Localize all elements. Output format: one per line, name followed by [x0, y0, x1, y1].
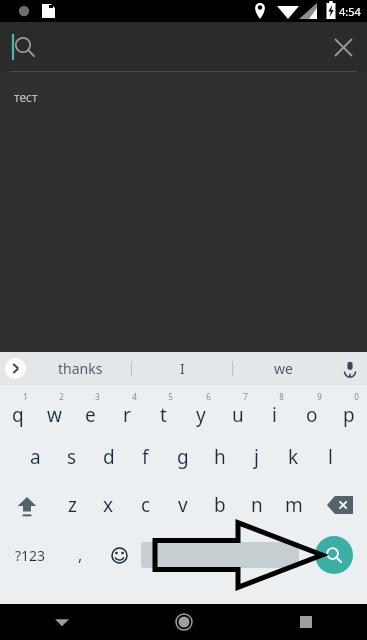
button[interactable]: Hide keyboard	[0, 604, 123, 640]
button[interactable]: 8	[256, 385, 293, 433]
button[interactable]: thanks	[30, 352, 131, 385]
staticText: j	[254, 444, 259, 470]
button[interactable]: ,	[61, 529, 100, 581]
staticText: 1	[23, 391, 28, 402]
button[interactable]: ?123	[0, 529, 61, 581]
button[interactable]: Backspace	[312, 481, 367, 529]
button[interactable]: j	[238, 433, 275, 481]
button[interactable]: n	[238, 481, 275, 529]
staticText: t	[160, 402, 167, 428]
staticText: ?123	[15, 546, 46, 565]
staticText: y	[196, 402, 206, 428]
button[interactable]: I	[132, 352, 232, 385]
button[interactable]: тест	[14, 89, 38, 105]
staticText: s	[67, 444, 77, 470]
button[interactable]: Home	[123, 604, 245, 640]
staticText: f	[142, 444, 149, 470]
button[interactable]: Shift	[0, 481, 54, 529]
staticText: i	[272, 402, 277, 428]
button[interactable]: k	[275, 433, 312, 481]
button[interactable]: Search	[301, 529, 367, 581]
staticText: 3	[95, 391, 100, 402]
button[interactable]: 7	[219, 385, 256, 433]
staticText: p	[343, 402, 355, 428]
button[interactable]: 4	[108, 385, 145, 433]
staticText: z	[68, 492, 77, 518]
staticText: ,	[78, 544, 83, 566]
staticText: 2	[59, 391, 64, 402]
button[interactable]: a	[17, 433, 53, 481]
button[interactable]: More suggestions	[0, 352, 30, 385]
staticText: 6	[206, 391, 211, 402]
button[interactable]: 0	[330, 385, 367, 433]
staticText: 4:54	[339, 4, 361, 19]
button[interactable]: v	[164, 481, 201, 529]
staticText: b	[214, 492, 226, 518]
staticText: 9	[317, 391, 322, 402]
button[interactable]: h	[201, 433, 238, 481]
staticText: e	[85, 402, 96, 428]
staticText: 7	[243, 391, 248, 402]
button[interactable]: 9	[293, 385, 330, 433]
button[interactable]: we	[233, 352, 333, 385]
button[interactable]: g	[164, 433, 201, 481]
button[interactable]: 2	[36, 385, 72, 433]
staticText: c	[141, 492, 151, 518]
staticText: we	[274, 359, 293, 378]
staticText: x	[103, 492, 114, 518]
staticText: thanks	[58, 359, 103, 378]
button[interactable]: b	[201, 481, 238, 529]
staticText: q	[12, 402, 24, 428]
staticText: I	[180, 359, 185, 378]
staticText: h	[214, 444, 226, 470]
button[interactable]: m	[275, 481, 312, 529]
staticText: r	[123, 402, 131, 428]
staticText: o	[306, 402, 318, 428]
staticText: 4	[132, 391, 137, 402]
staticText: m	[285, 492, 303, 518]
staticText: 0	[354, 391, 359, 402]
button[interactable]: z	[54, 481, 90, 529]
staticText: 8	[279, 391, 284, 402]
staticText: v	[178, 492, 188, 518]
button[interactable]: c	[127, 481, 164, 529]
staticText: w	[47, 402, 62, 428]
button[interactable]: Clear search	[319, 23, 367, 71]
button[interactable]: Voice input	[333, 352, 367, 385]
staticText: k	[288, 444, 299, 470]
button[interactable]: f	[127, 433, 164, 481]
button[interactable]: 5	[145, 385, 182, 433]
staticText: 5	[168, 391, 173, 402]
staticText: a	[30, 444, 41, 470]
button[interactable]: s	[53, 433, 90, 481]
button[interactable]: 1	[0, 385, 36, 433]
staticText: u	[232, 402, 244, 428]
staticText: l	[328, 444, 333, 470]
button[interactable]: 6	[182, 385, 219, 433]
staticText: g	[177, 444, 189, 470]
button[interactable]: 3	[72, 385, 108, 433]
button[interactable]: Space	[141, 542, 299, 568]
button[interactable]: Emoji	[100, 529, 139, 581]
button[interactable]: d	[90, 433, 127, 481]
button[interactable]: Recent apps	[245, 604, 367, 640]
staticText: n	[251, 492, 263, 518]
staticText: d	[103, 444, 115, 470]
button[interactable]: x	[90, 481, 127, 529]
button[interactable]: l	[312, 433, 349, 481]
